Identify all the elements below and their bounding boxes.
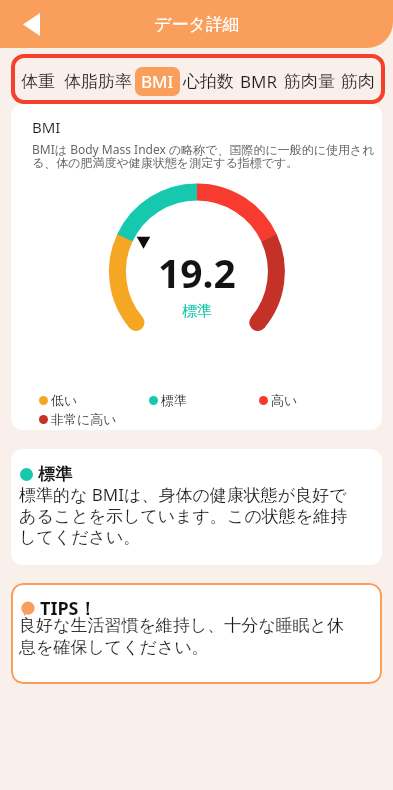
staticText: データ詳細 <box>154 14 240 35</box>
staticText: 体重 <box>21 71 55 92</box>
staticText: 標準的な BMIは、身体の健康状態が良好であることを示しています。この状態を維持… <box>19 483 355 548</box>
staticText: BMIは Body Mass Index の略称で、国際的に一般的に使用される、… <box>32 141 380 171</box>
staticText: 心拍数 <box>183 71 234 92</box>
button[interactable]: 筋肉 <box>341 71 375 92</box>
button[interactable]: 筋肉量 <box>284 71 335 92</box>
staticText: 標準 <box>38 464 72 485</box>
staticText: 筋肉 <box>341 71 375 92</box>
staticText: TIPS！ <box>40 596 97 621</box>
staticText: 筋肉量 <box>284 71 335 92</box>
button[interactable]: Back <box>16 9 46 39</box>
staticText: 19.2 <box>158 246 236 299</box>
button[interactable]: BMR <box>240 70 278 93</box>
button[interactable]: BMI <box>135 67 180 96</box>
button[interactable]: 心拍数 <box>183 71 234 92</box>
button[interactable]: 体脂肪率 <box>64 71 132 92</box>
staticText: 体脂肪率 <box>64 71 132 92</box>
button[interactable]: 体重 <box>21 71 55 92</box>
staticText: BMR <box>240 70 278 93</box>
staticText: 良好な生活習慣を維持し、十分な睡眠と休息を確保してください。 <box>19 615 355 658</box>
staticText: 低い <box>51 392 78 408</box>
staticText: BMI <box>141 70 174 93</box>
staticText: 高い <box>271 392 298 408</box>
staticText: 標準 <box>161 392 187 408</box>
staticText: 標準 <box>182 302 212 321</box>
staticText: BMI <box>32 117 61 137</box>
staticText: 非常に高い <box>51 411 117 427</box>
